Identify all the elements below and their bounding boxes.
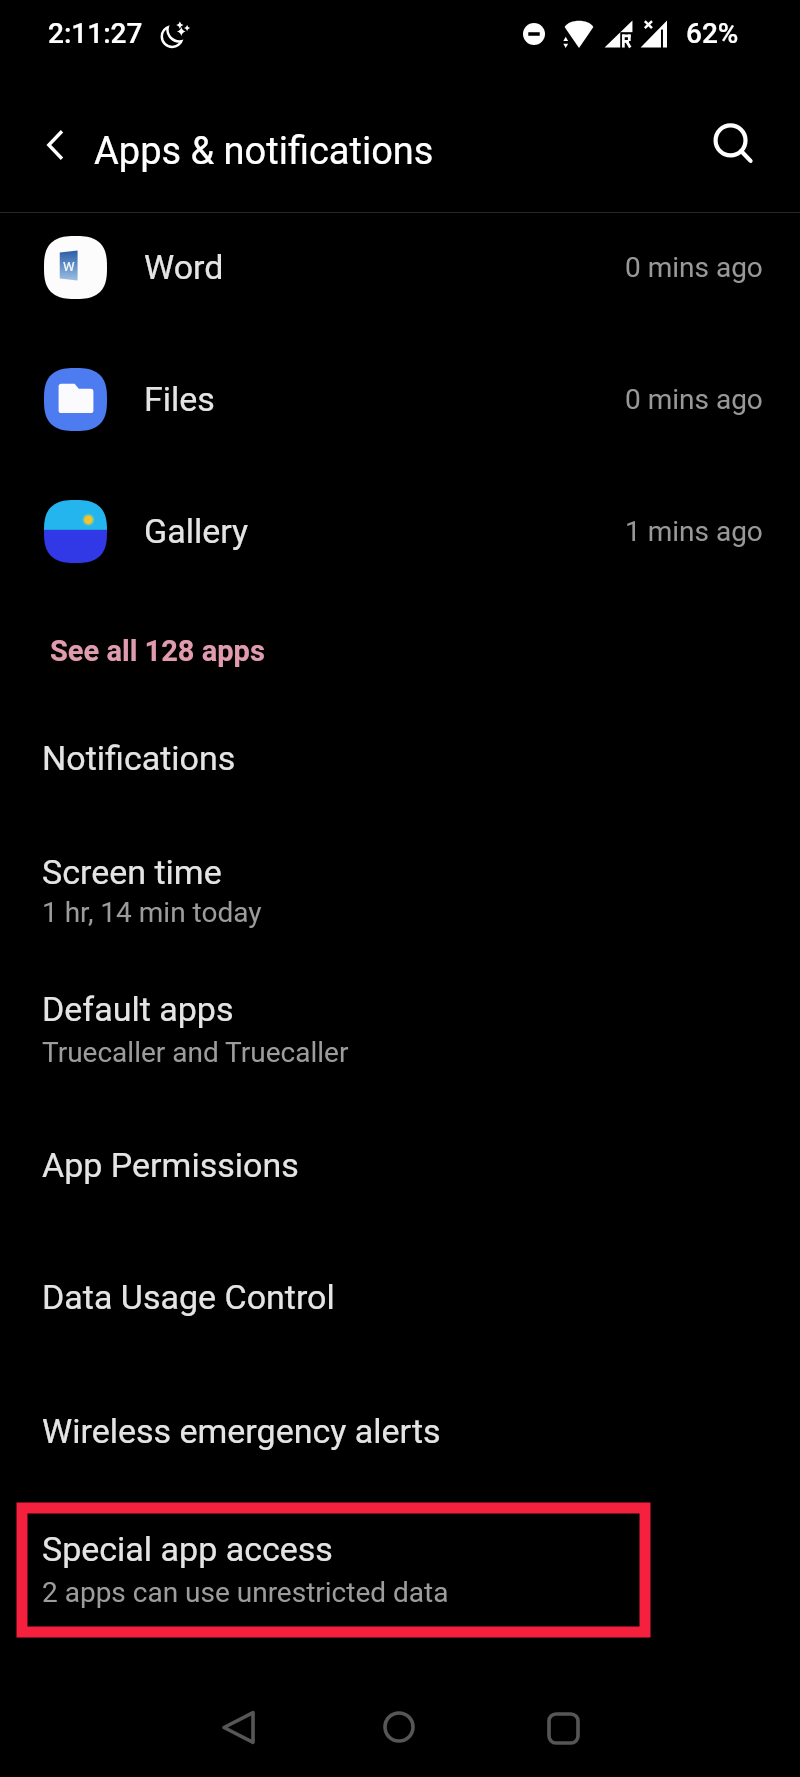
staticText: 0 mins ago (625, 383, 763, 416)
button[interactable]: Data Usage Control (0, 1242, 800, 1362)
button[interactable]: Notifications (0, 702, 800, 816)
staticText: 62% (686, 17, 739, 50)
staticText: Gallery (144, 511, 249, 551)
staticText: Apps & notifications (94, 129, 434, 174)
staticText: 1 mins ago (625, 515, 763, 548)
button[interactable]: Files (0, 333, 800, 465)
staticText: Default apps (42, 989, 234, 1029)
staticText: 1 hr, 14 min today (42, 896, 262, 929)
staticText: 2 apps can use unrestricted data (42, 1576, 449, 1609)
button[interactable]: Special app access (0, 1503, 800, 1637)
staticText: W (63, 259, 75, 274)
staticText: Files (144, 379, 215, 419)
button[interactable]: See all 128 apps (0, 612, 800, 688)
staticText: 0 mins ago (625, 251, 763, 284)
staticText: Special app access (42, 1529, 333, 1569)
button[interactable]: Home (349, 1677, 449, 1777)
button[interactable]: Search (701, 112, 767, 178)
staticText: Data Usage Control (42, 1277, 335, 1317)
button[interactable]: Recent apps (513, 1678, 613, 1777)
staticText: Truecaller and Truecaller (42, 1036, 349, 1069)
button[interactable]: Screen time (0, 825, 800, 959)
staticText: Notifications (42, 738, 236, 778)
button[interactable]: Wireless emergency alerts (0, 1376, 800, 1496)
button[interactable]: App Permissions (0, 1110, 800, 1228)
button[interactable]: Back (188, 1677, 288, 1777)
staticText: See all 128 apps (50, 634, 265, 668)
button[interactable]: W (0, 201, 800, 333)
button[interactable]: Default apps (0, 962, 800, 1098)
staticText: Word (144, 247, 224, 287)
staticText: Wireless emergency alerts (42, 1411, 441, 1451)
button[interactable]: Back (24, 113, 88, 177)
staticText: 2:11:27 (48, 17, 143, 50)
button[interactable]: Gallery (0, 465, 800, 597)
staticText: Screen time (42, 852, 222, 892)
staticText: App Permissions (42, 1145, 299, 1185)
